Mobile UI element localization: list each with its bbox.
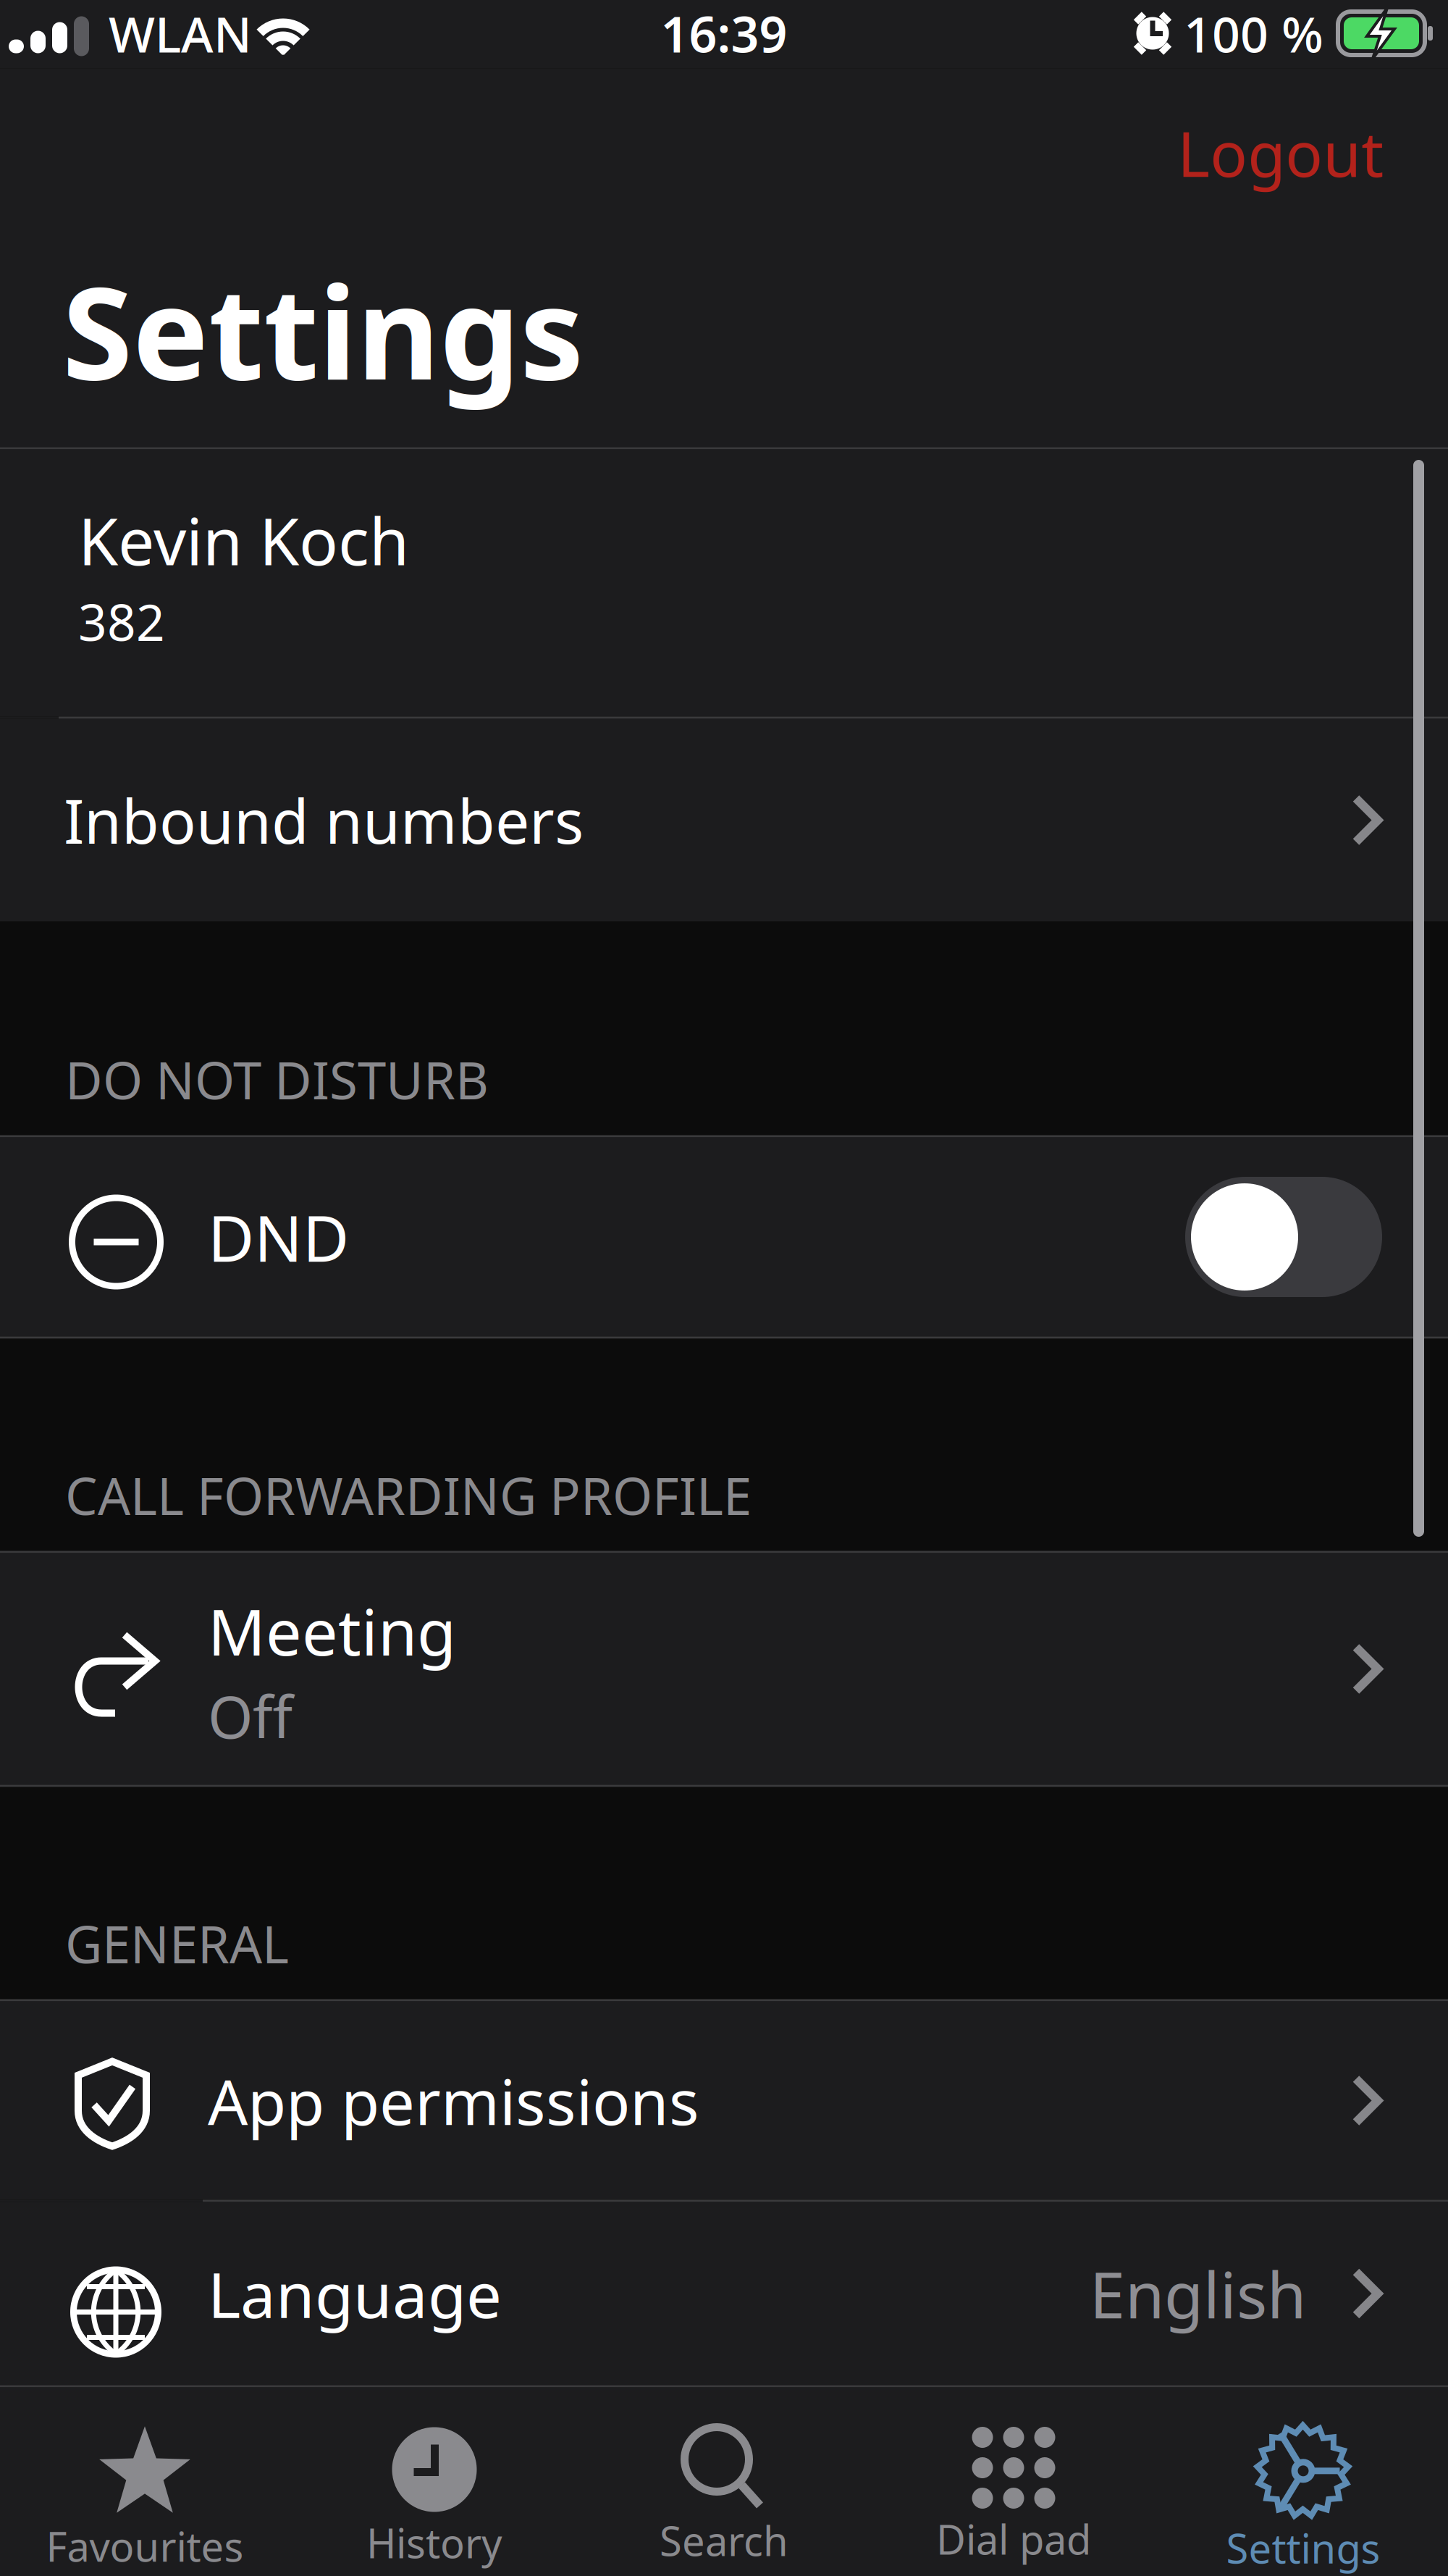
staticText: History: [366, 2516, 502, 2569]
staticText: App permissions: [208, 2059, 699, 2142]
staticText: Off: [208, 1678, 292, 1754]
staticText: Dial pad: [936, 2512, 1091, 2566]
button[interactable]: Inbound numbers: [0, 719, 1448, 922]
button[interactable]: Settings: [1158, 2387, 1448, 2576]
staticText: Inbound numbers: [64, 780, 584, 861]
staticText: Settings: [1226, 2521, 1380, 2575]
staticText: Language: [208, 2252, 502, 2335]
staticText: DND: [208, 1195, 349, 1279]
button[interactable]: Meeting: [0, 1553, 1448, 1785]
staticText: English: [1090, 2251, 1306, 2336]
staticText: Search: [660, 2513, 788, 2567]
button[interactable]: Dial pad: [869, 2387, 1158, 2576]
button[interactable]: Search: [579, 2387, 869, 2576]
staticText: 16:39: [661, 1, 787, 66]
staticText: GENERAL: [65, 1910, 289, 1977]
button[interactable]: History: [290, 2387, 579, 2576]
staticText: Logout: [1177, 112, 1384, 194]
staticText: 382: [78, 588, 165, 655]
staticText: Kevin Koch: [78, 497, 409, 583]
staticText: Favourites: [46, 2519, 244, 2573]
staticText: WLAN: [109, 1, 252, 66]
button[interactable]: Language: [0, 2202, 1448, 2385]
button[interactable]: Favourites: [0, 2387, 290, 2576]
staticText: Settings: [62, 245, 584, 415]
button[interactable]: App permissions: [0, 2001, 1448, 2200]
staticText: CALL FORWARDING PROFILE: [65, 1461, 752, 1529]
staticText: Meeting: [208, 1589, 456, 1673]
staticText: DO NOT DISTURB: [65, 1046, 489, 1113]
button[interactable]: Logout: [1148, 68, 1448, 211]
staticText: 100 %: [1184, 1, 1323, 66]
